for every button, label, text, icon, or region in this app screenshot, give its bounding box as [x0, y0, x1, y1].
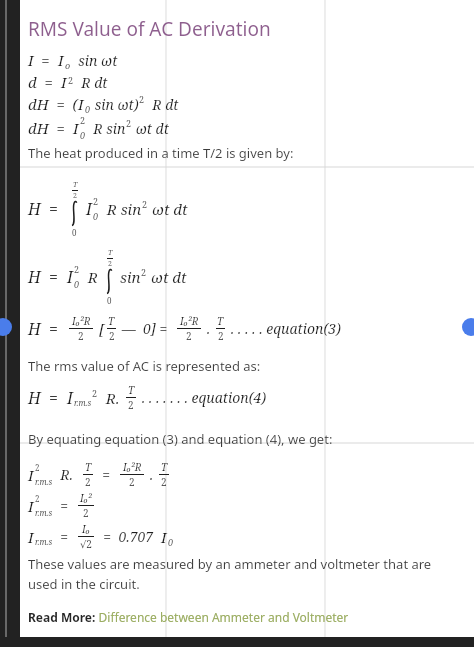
staticText: 2	[218, 329, 224, 343]
staticText: 0	[168, 536, 174, 548]
staticText: R.	[53, 465, 81, 484]
staticText: R	[80, 267, 102, 287]
staticText: — 0] =	[118, 319, 175, 338]
staticText: 0	[74, 278, 80, 290]
staticText: 2	[109, 329, 115, 343]
staticText: RMS Value of AC Derivation	[28, 16, 271, 42]
staticText: 2	[108, 259, 112, 269]
staticText: dH =	[28, 118, 73, 138]
staticText: R.	[98, 388, 124, 408]
staticText: [	[95, 319, 105, 339]
staticText: 2	[126, 117, 132, 129]
staticText: √2	[80, 537, 92, 551]
staticText: sin ωt)	[91, 95, 139, 114]
staticText: .	[146, 465, 157, 484]
staticText: I	[161, 527, 167, 547]
staticText: 2	[128, 398, 134, 412]
staticText: 2	[83, 506, 89, 520]
staticText: R dt	[74, 73, 108, 92]
staticText: I =	[28, 50, 58, 70]
staticText: . . . . . equation(3)	[227, 319, 341, 338]
staticText: I	[61, 72, 67, 92]
staticText: 2	[92, 387, 98, 399]
staticText: 2	[139, 93, 145, 105]
staticText: 2	[141, 266, 147, 278]
button[interactable]: Selection start handle	[0, 318, 12, 336]
staticText: 2	[85, 475, 91, 489]
staticText: used in the circuit.	[28, 575, 140, 593]
staticText: I	[28, 465, 34, 485]
staticText: 2	[142, 198, 148, 210]
staticText: 2	[161, 475, 167, 489]
staticText: 2	[35, 462, 40, 473]
staticText: T	[108, 248, 113, 258]
staticText: sin	[120, 267, 141, 287]
staticText: T	[217, 314, 224, 328]
staticText: o	[65, 59, 71, 71]
staticText: 0	[85, 103, 91, 115]
staticText: 2	[80, 114, 86, 126]
staticText: 2	[78, 329, 84, 343]
staticText: 0	[72, 227, 77, 238]
staticText: 2	[186, 329, 192, 343]
staticText: These values are measured by an ammeter …	[28, 555, 432, 573]
staticText: By equating equation (3) and equation (4…	[28, 430, 333, 448]
staticText: I	[67, 266, 73, 288]
button[interactable]: Selection end handle	[462, 318, 474, 336]
staticText: d =	[28, 72, 61, 92]
staticText: H =	[28, 266, 67, 288]
staticText: 2	[68, 74, 74, 86]
staticText: 2	[73, 191, 77, 201]
staticText: sin ωt	[71, 51, 118, 70]
staticText: H =	[28, 318, 67, 340]
staticText: I	[78, 94, 84, 114]
staticText: 2	[74, 263, 80, 275]
staticText: T	[73, 180, 78, 190]
staticText: =	[53, 527, 76, 546]
staticText: R sin	[99, 199, 142, 219]
staticText: 0	[80, 129, 86, 141]
staticText: I₀²	[80, 491, 92, 505]
staticText: 0	[107, 295, 112, 306]
staticText: I	[28, 527, 34, 547]
staticText: 0	[93, 210, 99, 222]
staticText: . . . . . . . equation(4)	[138, 388, 267, 407]
staticText: ωt dt	[147, 267, 187, 287]
staticText: 2	[129, 475, 135, 489]
staticText: I₀²R	[180, 314, 199, 328]
staticText: .	[203, 319, 214, 338]
staticText: 2	[93, 195, 99, 207]
button[interactable]: Read More: Difference between Ammeter an…	[20, 607, 474, 627]
staticText: r.m.s	[74, 397, 92, 408]
staticText: I₀²R	[72, 314, 91, 328]
staticText: I	[58, 50, 64, 70]
staticText: The rms value of AC is represented as:	[28, 357, 261, 375]
staticText: I	[67, 387, 73, 409]
staticText: T	[161, 460, 168, 474]
staticText: r.m.s	[35, 507, 53, 518]
staticText: T	[128, 383, 135, 397]
staticText: I₀²R	[123, 460, 142, 474]
staticText: ωt dt	[132, 119, 169, 138]
staticText: r.m.s	[35, 536, 53, 547]
staticText: I	[86, 198, 92, 220]
staticText: =	[53, 496, 76, 515]
staticText: R dt	[145, 95, 179, 114]
staticText: = 0.707	[96, 527, 161, 546]
staticText: H =	[28, 198, 67, 220]
staticText: I	[73, 118, 79, 138]
staticText: T	[108, 314, 115, 328]
staticText: I₀	[82, 522, 90, 536]
staticText: T	[85, 460, 92, 474]
staticText: ωt dt	[148, 199, 188, 219]
staticText: I	[28, 496, 34, 516]
staticText: 2	[35, 493, 40, 504]
staticText: Read More: Difference between Ammeter an…	[28, 609, 349, 625]
staticText: The heat produced in a time T/2 is given…	[28, 144, 294, 162]
staticText: R sin	[86, 119, 126, 138]
other: Text selection handles	[0, 0, 474, 647]
staticText: H =	[28, 387, 67, 409]
staticText: =	[95, 465, 118, 484]
staticText: r.m.s	[35, 476, 53, 487]
staticText: dH = (	[28, 94, 78, 114]
